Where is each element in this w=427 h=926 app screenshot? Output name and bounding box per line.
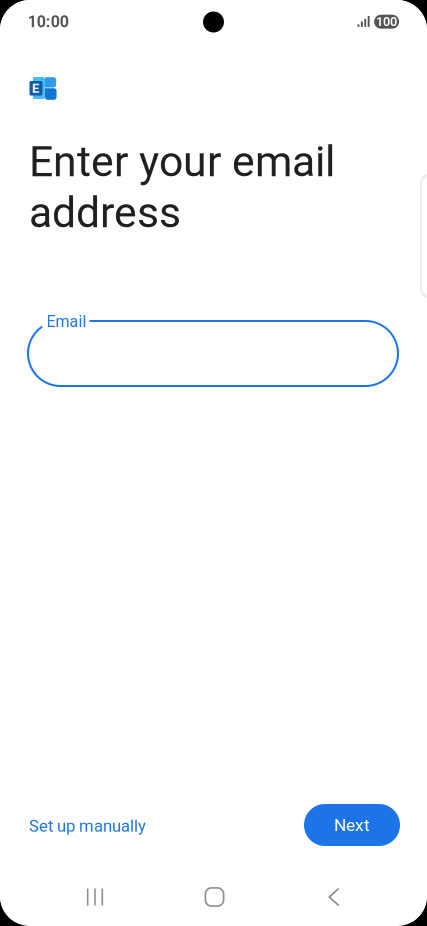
button[interactable]: Set up manually [29,806,153,846]
staticText: E [32,80,40,96]
button[interactable]: Back [286,872,382,922]
button[interactable]: Home [166,872,262,922]
button[interactable]: Next [304,804,400,846]
staticText: Next [334,815,370,835]
staticText: 100 [376,14,397,29]
button[interactable]: Recent apps [47,872,143,922]
staticText: Enter your email address [29,137,335,238]
staticText: Set up manually [29,816,146,836]
staticText: Email [47,312,87,331]
button[interactable]: Email [28,321,398,386]
staticText: 10:00 [28,12,69,31]
